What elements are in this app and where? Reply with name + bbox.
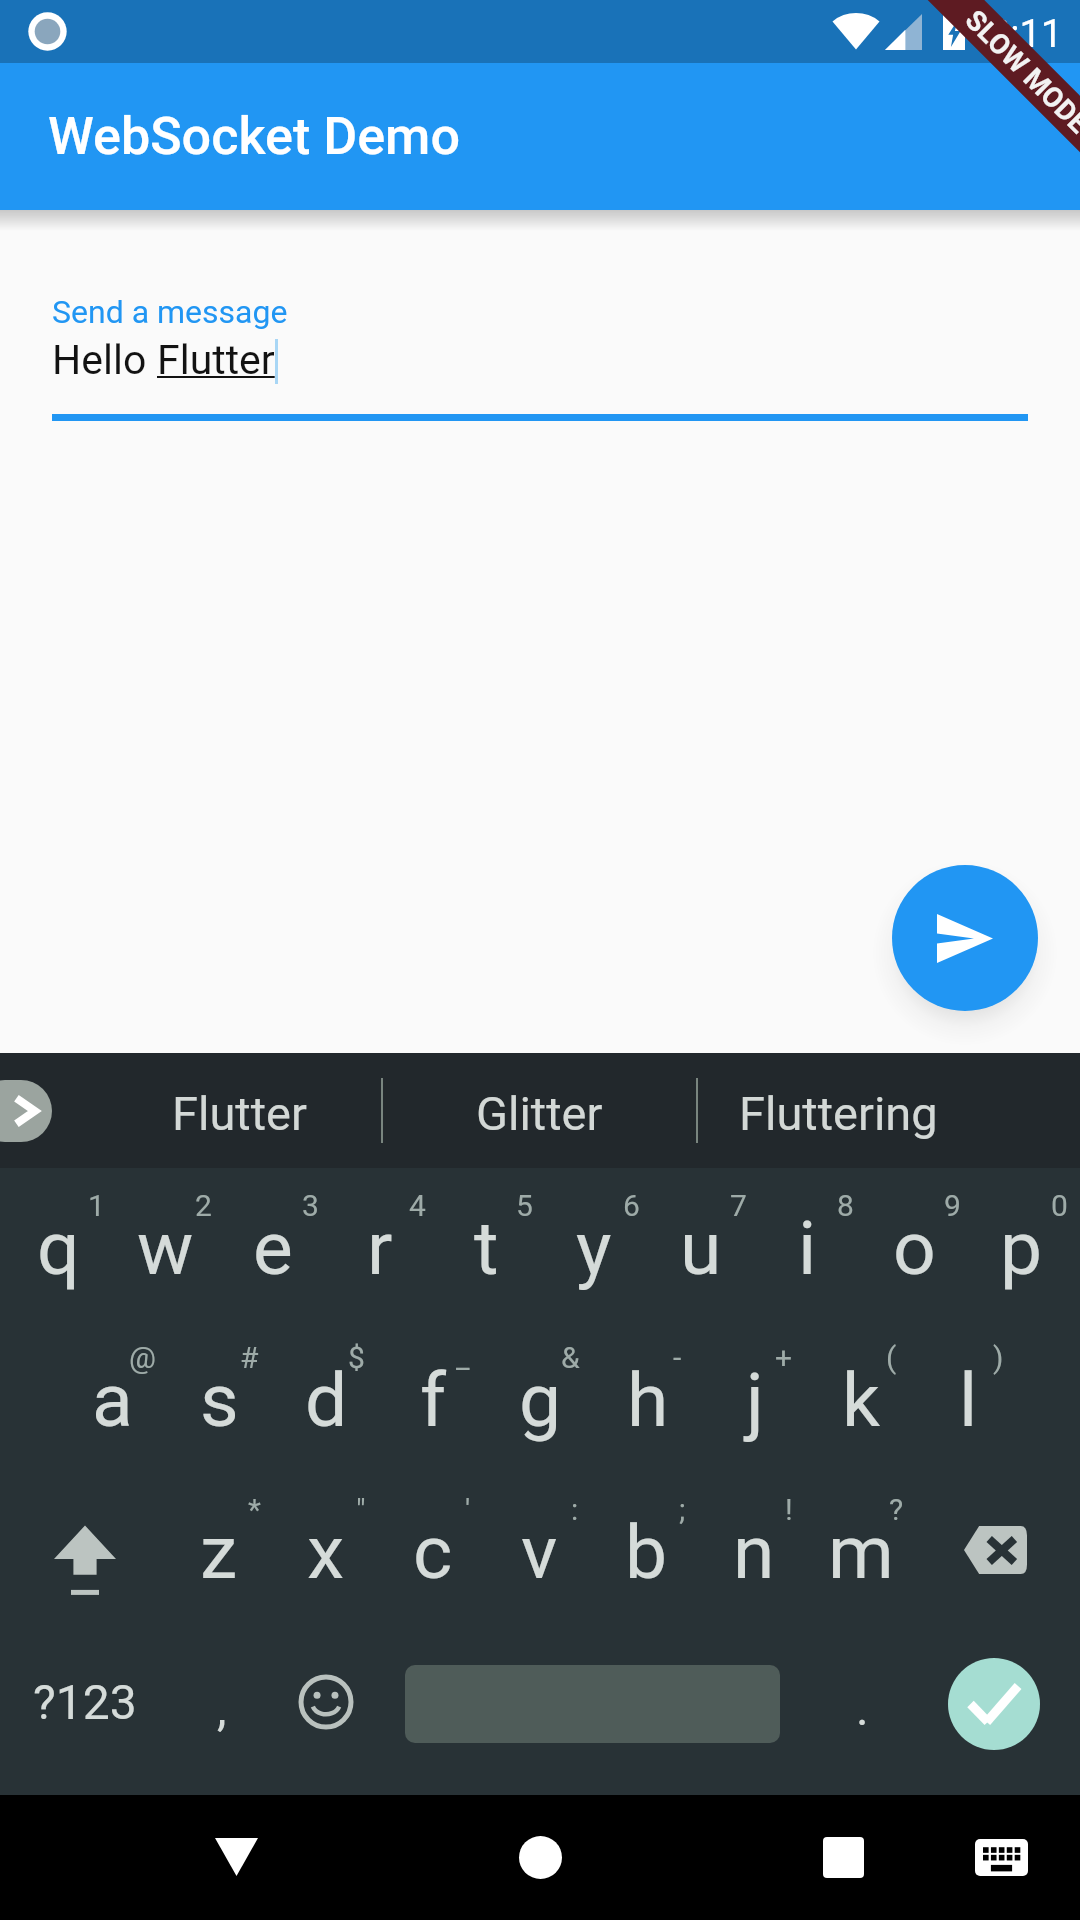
button[interactable]: r — [326, 1176, 433, 1320]
button[interactable]: Send message — [892, 865, 1038, 1011]
button[interactable]: Recent apps — [797, 1811, 889, 1903]
staticText: @ — [129, 1340, 156, 1375]
staticText: s — [200, 1356, 239, 1444]
staticText: . — [856, 1680, 869, 1736]
button[interactable]: x — [272, 1480, 379, 1624]
button[interactable]: Enter — [948, 1658, 1040, 1750]
button[interactable]: o — [861, 1176, 968, 1320]
staticText: l — [959, 1356, 978, 1444]
button[interactable]: y — [540, 1176, 647, 1320]
staticText: g — [519, 1356, 562, 1444]
staticText: WebSocket Demo — [48, 106, 460, 167]
staticText: + — [775, 1340, 793, 1375]
button[interactable]: n — [700, 1480, 807, 1624]
staticText: 0 — [1051, 1188, 1068, 1223]
staticText: ; — [679, 1492, 686, 1527]
staticText: 1 — [88, 1188, 105, 1223]
staticText: d — [305, 1356, 348, 1444]
staticText: e — [253, 1204, 293, 1292]
staticText: : — [571, 1492, 579, 1527]
staticText: " — [356, 1492, 366, 1527]
staticText: z — [200, 1508, 238, 1596]
staticText: c — [413, 1508, 453, 1596]
button[interactable]: f — [380, 1328, 487, 1472]
staticText: i — [798, 1204, 817, 1292]
staticText: m — [828, 1508, 894, 1596]
staticText: SLOW MODE — [959, 3, 1080, 140]
staticText: 7 — [730, 1188, 747, 1223]
staticText: ' — [465, 1492, 471, 1527]
staticText: ! — [785, 1492, 793, 1527]
staticText: ( — [886, 1340, 897, 1375]
staticText: 2 — [195, 1188, 212, 1223]
button[interactable]: ?123 — [0, 1627, 170, 1777]
button[interactable]: h — [594, 1328, 701, 1472]
button[interactable]: e — [219, 1176, 326, 1320]
button[interactable]: . — [812, 1633, 912, 1783]
button[interactable]: g — [487, 1328, 594, 1472]
button[interactable]: a — [59, 1328, 166, 1472]
button[interactable]: Back — [190, 1811, 282, 1903]
staticText: b — [625, 1508, 668, 1596]
button[interactable]: l — [915, 1328, 1022, 1472]
staticText: - — [673, 1340, 682, 1375]
button[interactable]: z — [165, 1480, 272, 1624]
button[interactable]: Backspace — [942, 1477, 1049, 1622]
staticText: p — [1000, 1204, 1043, 1292]
staticText: ) — [993, 1340, 1004, 1375]
button[interactable]: w — [112, 1176, 219, 1320]
button[interactable]: q — [5, 1176, 112, 1320]
button[interactable]: s — [166, 1328, 273, 1472]
button[interactable]: Flutter — [89, 1053, 389, 1168]
button[interactable]: Fluttering — [688, 1053, 988, 1168]
staticText: k — [842, 1356, 881, 1444]
button[interactable]: More suggestions — [0, 1080, 52, 1142]
staticText: & — [561, 1340, 580, 1375]
staticText: 5 — [516, 1188, 533, 1223]
staticText: Send a message — [52, 293, 288, 331]
staticText: u — [680, 1204, 722, 1292]
button[interactable]: t — [433, 1176, 540, 1320]
staticText: # — [240, 1340, 259, 1375]
staticText: o — [893, 1204, 936, 1292]
button[interactable]: i — [754, 1176, 861, 1320]
button[interactable]: Glitter — [389, 1053, 689, 1168]
button[interactable]: j — [701, 1328, 808, 1472]
staticText: h — [627, 1356, 669, 1444]
staticText: $ — [348, 1340, 365, 1375]
staticText: * — [248, 1492, 261, 1527]
staticText: 4 — [409, 1188, 426, 1223]
button[interactable]: Switch keyboard — [955, 1811, 1047, 1903]
staticText: q — [37, 1204, 80, 1292]
button[interactable]: p — [968, 1176, 1075, 1320]
button[interactable]: Shift — [25, 1477, 145, 1622]
staticText: 8 — [837, 1188, 854, 1223]
staticText: t — [474, 1204, 499, 1292]
button[interactable]: k — [808, 1328, 915, 1472]
staticText: Glitter — [476, 1086, 603, 1141]
staticText: a — [92, 1356, 133, 1444]
button[interactable]: u — [647, 1176, 754, 1320]
button[interactable]: Home — [494, 1811, 586, 1903]
staticText: 2:11 — [989, 12, 1063, 57]
button[interactable]: v — [486, 1480, 593, 1624]
button[interactable]: Emoji — [274, 1627, 378, 1777]
staticText: f — [420, 1356, 447, 1444]
staticText: Fluttering — [739, 1086, 938, 1141]
staticText: n — [733, 1508, 775, 1596]
button[interactable]: d — [273, 1328, 380, 1472]
button[interactable]: m — [807, 1480, 914, 1624]
staticText: Hello — [52, 336, 157, 384]
staticText: j — [746, 1356, 764, 1444]
staticText: w — [137, 1204, 194, 1292]
staticText: 3 — [302, 1188, 319, 1223]
staticText: v — [521, 1508, 558, 1596]
staticText: , — [217, 1680, 227, 1736]
button[interactable]: , — [172, 1633, 272, 1783]
staticText: x — [307, 1508, 345, 1596]
button[interactable]: c — [379, 1480, 486, 1624]
staticText: y — [576, 1204, 612, 1292]
staticText: r — [367, 1204, 393, 1292]
button[interactable]: b — [593, 1480, 700, 1624]
